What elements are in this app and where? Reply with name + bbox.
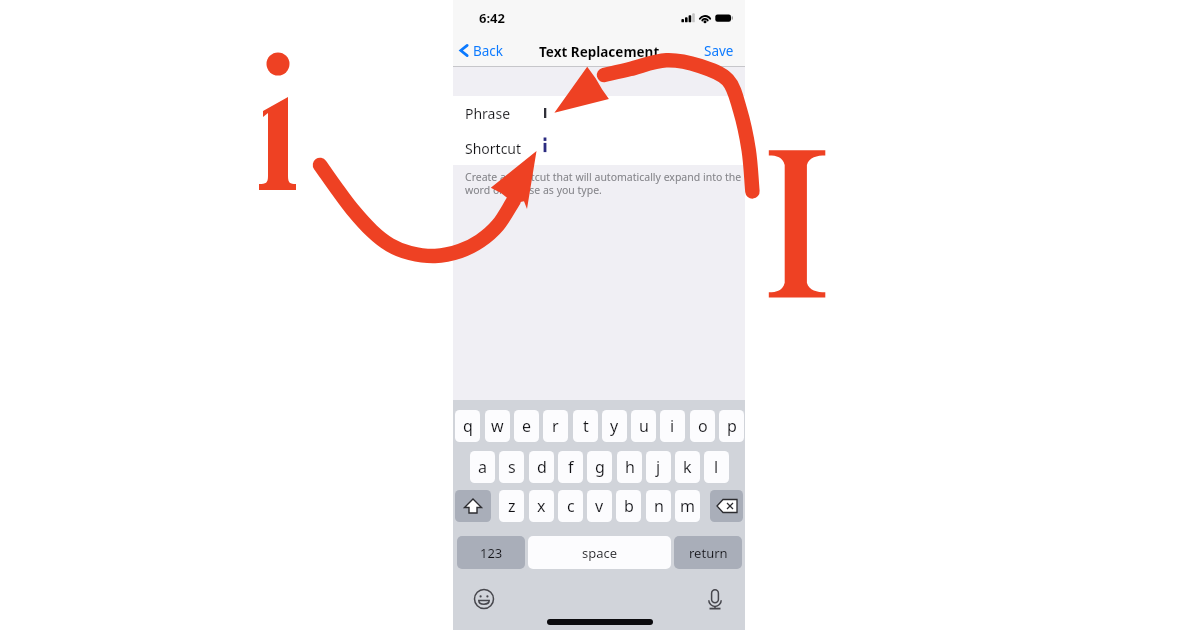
staticText: d bbox=[537, 456, 547, 478]
button[interactable]: Dictation bbox=[703, 586, 727, 610]
button[interactable]: k bbox=[675, 451, 700, 483]
staticText: m bbox=[680, 495, 695, 517]
staticText: Save bbox=[704, 42, 734, 60]
button[interactable]: p bbox=[719, 410, 744, 442]
button[interactable]: Shortcut bbox=[453, 131, 745, 165]
staticText: o bbox=[698, 415, 708, 437]
staticText: r bbox=[552, 415, 559, 437]
button[interactable]: m bbox=[675, 490, 700, 522]
button[interactable]: x bbox=[529, 490, 554, 522]
staticText: w bbox=[491, 415, 504, 437]
staticText: f bbox=[568, 456, 574, 478]
button[interactable]: n bbox=[646, 490, 671, 522]
staticText: i bbox=[670, 415, 675, 437]
staticText: e bbox=[522, 415, 532, 437]
button[interactable]: Back bbox=[453, 34, 510, 67]
button[interactable]: y bbox=[602, 410, 627, 442]
staticText: 123 bbox=[480, 544, 503, 562]
staticText: Back bbox=[473, 42, 504, 60]
button[interactable]: s bbox=[499, 451, 524, 483]
staticText: Phrase bbox=[465, 104, 511, 123]
staticText: x bbox=[537, 495, 546, 517]
staticText: v bbox=[595, 495, 604, 517]
button[interactable]: h bbox=[617, 451, 642, 483]
button[interactable]: o bbox=[690, 410, 715, 442]
staticText: q bbox=[463, 415, 473, 437]
staticText: space bbox=[582, 544, 618, 562]
staticText: a bbox=[478, 456, 487, 478]
button[interactable]: return bbox=[674, 536, 742, 569]
button[interactable]: a bbox=[470, 451, 495, 483]
button[interactable]: v bbox=[587, 490, 612, 522]
button[interactable]: i bbox=[660, 410, 685, 442]
button[interactable]: Shift bbox=[455, 490, 491, 522]
staticText: Text Replacement bbox=[539, 43, 660, 61]
staticText: n bbox=[654, 495, 664, 517]
button[interactable]: q bbox=[455, 410, 480, 442]
staticText: 6:42 bbox=[479, 9, 505, 27]
button[interactable]: f bbox=[558, 451, 583, 483]
staticText: h bbox=[625, 456, 635, 478]
staticText: z bbox=[508, 495, 516, 517]
button[interactable]: 123 bbox=[457, 536, 525, 569]
button[interactable]: space bbox=[528, 536, 671, 569]
staticText: Create a shortcut that will automaticall… bbox=[465, 170, 742, 197]
button[interactable]: l bbox=[704, 451, 729, 483]
button[interactable]: Save bbox=[696, 34, 745, 67]
button[interactable]: Emoji keyboard bbox=[472, 587, 496, 611]
staticText: g bbox=[595, 456, 605, 478]
staticText: k bbox=[683, 456, 692, 478]
button[interactable]: u bbox=[631, 410, 656, 442]
staticText: s bbox=[508, 456, 516, 478]
staticText: y bbox=[610, 415, 619, 437]
staticText: b bbox=[624, 495, 634, 517]
staticText: u bbox=[639, 415, 649, 437]
button[interactable]: b bbox=[616, 490, 641, 522]
button[interactable]: r bbox=[543, 410, 568, 442]
button[interactable]: z bbox=[499, 490, 524, 522]
staticText: c bbox=[567, 495, 575, 517]
button[interactable]: w bbox=[485, 410, 510, 442]
button[interactable]: d bbox=[529, 451, 554, 483]
staticText: t bbox=[583, 415, 589, 437]
button[interactable]: c bbox=[558, 490, 583, 522]
button[interactable]: j bbox=[646, 451, 671, 483]
button[interactable]: Delete bbox=[710, 490, 743, 522]
button[interactable]: g bbox=[587, 451, 612, 483]
button[interactable]: t bbox=[573, 410, 598, 442]
staticText: return bbox=[689, 544, 728, 562]
staticText: l bbox=[714, 456, 719, 478]
staticText: j bbox=[656, 456, 661, 478]
button[interactable]: e bbox=[514, 410, 539, 442]
staticText: p bbox=[727, 415, 737, 437]
button[interactable]: Phrase bbox=[453, 96, 745, 130]
staticText: Shortcut bbox=[465, 139, 522, 158]
